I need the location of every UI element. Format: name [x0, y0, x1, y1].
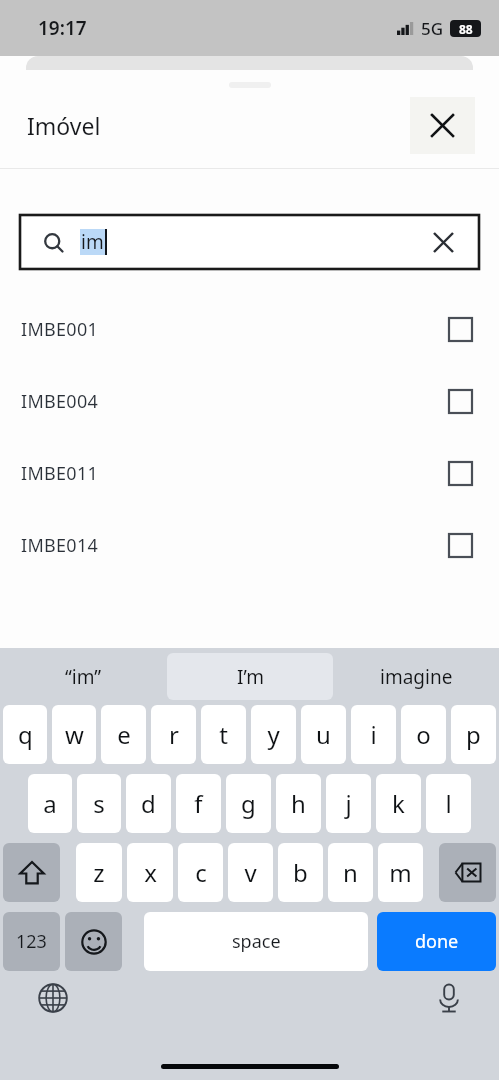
- button[interactable]: o: [401, 705, 446, 764]
- button[interactable]: done: [377, 912, 496, 971]
- button[interactable]: g: [226, 774, 271, 833]
- staticText: y: [267, 718, 280, 751]
- staticText: IMBE004: [21, 389, 449, 414]
- button[interactable]: Change keyboard: [38, 983, 68, 1013]
- button[interactable]: IMBE014: [0, 509, 499, 581]
- button[interactable]: Clear search: [434, 233, 453, 252]
- button[interactable]: q: [3, 705, 47, 764]
- button[interactable]: t: [201, 705, 246, 764]
- staticText: u: [316, 718, 331, 751]
- button[interactable]: IMBE011: [0, 437, 499, 509]
- staticText: z: [93, 856, 105, 889]
- staticText: r: [169, 718, 179, 751]
- button[interactable]: Numbers: [3, 912, 60, 971]
- button[interactable]: s: [77, 774, 121, 833]
- staticText: space: [232, 929, 281, 954]
- staticText: t: [219, 718, 228, 751]
- button[interactable]: d: [126, 774, 171, 833]
- staticText: o: [416, 718, 431, 751]
- staticText: l: [445, 787, 452, 820]
- staticText: IMBE014: [21, 533, 449, 558]
- staticText: “im”: [65, 664, 102, 690]
- staticText: p: [466, 718, 481, 751]
- button[interactable]: j: [326, 774, 371, 833]
- button[interactable]: b: [278, 843, 323, 902]
- button[interactable]: w: [52, 705, 96, 764]
- staticText: c: [195, 856, 207, 889]
- button[interactable]: IMBE001: [0, 293, 499, 365]
- button[interactable]: Emoji: [65, 912, 122, 971]
- button[interactable]: z: [76, 843, 122, 902]
- button[interactable]: m: [378, 843, 423, 902]
- button[interactable]: y: [251, 705, 296, 764]
- button[interactable]: r: [151, 705, 196, 764]
- staticText: f: [194, 787, 203, 820]
- staticText: g: [241, 787, 256, 820]
- button[interactable]: x: [127, 843, 173, 902]
- staticText: 88: [459, 21, 473, 37]
- button[interactable]: u: [301, 705, 346, 764]
- button[interactable]: “im”: [0, 648, 167, 705]
- button[interactable]: imagine: [333, 648, 499, 705]
- staticText: 19:17: [38, 15, 87, 41]
- staticText: q: [18, 718, 33, 751]
- button[interactable]: f: [176, 774, 221, 833]
- button[interactable]: h: [276, 774, 321, 833]
- staticText: s: [93, 787, 105, 820]
- staticText: IMBE001: [21, 317, 449, 342]
- staticText: 5G: [421, 17, 444, 40]
- staticText: 123: [16, 929, 47, 954]
- button[interactable]: Dictation: [437, 983, 461, 1013]
- button[interactable]: a: [28, 774, 72, 833]
- button[interactable]: space: [144, 912, 368, 971]
- staticText: w: [65, 718, 84, 751]
- staticText: b: [293, 856, 308, 889]
- staticText: h: [291, 787, 306, 820]
- button[interactable]: v: [228, 843, 273, 902]
- button[interactable]: n: [328, 843, 373, 902]
- staticText: Imóvel: [27, 110, 101, 141]
- staticText: done: [415, 929, 459, 954]
- button[interactable]: Backspace: [439, 843, 496, 902]
- staticText: im: [81, 229, 104, 255]
- button[interactable]: l: [426, 774, 471, 833]
- staticText: d: [141, 787, 156, 820]
- button[interactable]: Close: [410, 97, 475, 154]
- staticText: v: [244, 856, 257, 889]
- button[interactable]: IMBE004: [0, 365, 499, 437]
- staticText: n: [343, 856, 358, 889]
- staticText: e: [117, 718, 131, 751]
- button[interactable]: c: [178, 843, 223, 902]
- button[interactable]: Shift: [3, 843, 60, 902]
- staticText: m: [389, 856, 412, 889]
- staticText: x: [144, 856, 157, 889]
- staticText: i: [370, 718, 377, 751]
- staticText: IMBE011: [21, 461, 449, 486]
- staticText: imagine: [380, 664, 453, 690]
- button[interactable]: e: [101, 705, 146, 764]
- button[interactable]: I’m: [167, 653, 333, 700]
- staticText: I’m: [237, 664, 264, 690]
- button[interactable]: i: [351, 705, 396, 764]
- button[interactable]: im: [20, 215, 479, 269]
- staticText: k: [392, 787, 405, 820]
- button[interactable]: k: [376, 774, 421, 833]
- staticText: j: [345, 787, 352, 820]
- button[interactable]: p: [451, 705, 496, 764]
- staticText: a: [43, 787, 57, 820]
